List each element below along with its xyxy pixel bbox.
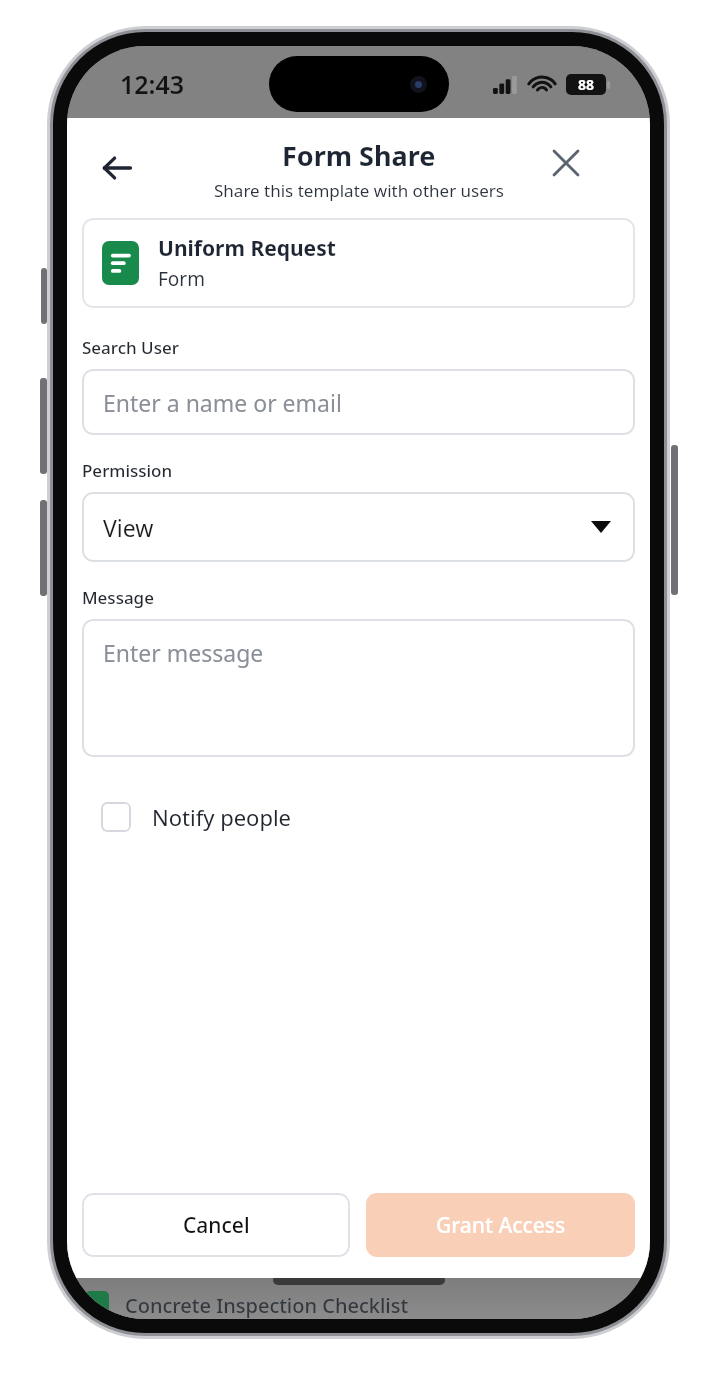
staticText: Enter a name or email [103, 387, 342, 418]
button[interactable]: Close [540, 137, 592, 189]
staticText: Grant Access [436, 1211, 566, 1240]
staticText: Enter message [103, 637, 264, 668]
staticText: Notify people [152, 802, 292, 832]
button[interactable]: Cancel [82, 1193, 350, 1257]
button[interactable]: View [82, 492, 635, 562]
button[interactable]: Uniform Request [82, 218, 635, 308]
staticText: Form [158, 266, 205, 292]
staticText: Form Share [282, 137, 436, 174]
staticText: Share this template with other users [214, 179, 504, 202]
staticText: Search User [82, 336, 179, 359]
button[interactable]: Back [89, 140, 145, 196]
staticText: 88 [578, 75, 595, 94]
button[interactable]: Grant Access [366, 1193, 635, 1257]
button[interactable]: Enter message [82, 619, 635, 757]
staticText: 12:43 [120, 67, 185, 101]
staticText: View [103, 512, 154, 543]
button[interactable]: Notify people [82, 791, 306, 843]
staticText: Permission [82, 459, 173, 482]
staticText: Cancel [183, 1211, 250, 1240]
staticText: Message [82, 586, 154, 609]
button[interactable]: Enter a name or email [82, 369, 635, 435]
staticText: Uniform Request [158, 234, 336, 263]
staticText: Concrete Inspection Checklist [125, 1292, 409, 1319]
